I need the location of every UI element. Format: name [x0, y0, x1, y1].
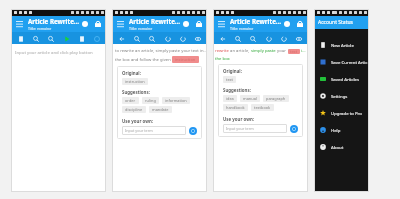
button[interactable]: Open navigation menu: [217, 20, 226, 29]
button[interactable]: Account: [182, 20, 190, 28]
staticText: ruling: [145, 98, 156, 103]
staticText: Suggestions:: [122, 89, 150, 95]
staticText: Original:: [223, 68, 242, 74]
staticText: an article,: [229, 48, 251, 54]
button[interactable]: Submit term: [189, 127, 197, 135]
button[interactable]: Save Current Artic: [314, 53, 369, 70]
staticText: instruction: [125, 79, 145, 84]
button[interactable]: Zoom in: [232, 33, 243, 44]
staticText: idea: [226, 96, 234, 101]
button[interactable]: Zoom in: [30, 33, 41, 44]
button[interactable]: About: [314, 138, 369, 155]
button[interactable]: Submit term: [290, 125, 298, 133]
staticText: Suggestions:: [223, 87, 251, 93]
staticText: Settings: [331, 93, 348, 99]
staticText: New Article: [331, 42, 354, 48]
button[interactable]: Input your term: [226, 124, 284, 133]
staticText: Saved Articles: [331, 76, 359, 82]
button[interactable]: Lock: [195, 20, 203, 28]
staticText: Article Rewriter & Spin...: [28, 17, 81, 25]
button[interactable]: Zoom in: [131, 33, 142, 44]
staticText: mandate: [152, 107, 169, 112]
button[interactable]: Zoom out: [247, 33, 258, 44]
button[interactable]: manual: [243, 96, 257, 101]
button[interactable]: Settings: [314, 87, 369, 104]
staticText: Input your term: [226, 126, 254, 131]
button[interactable]: Open navigation menu: [15, 20, 24, 29]
staticText: the box: [215, 56, 230, 62]
staticText: Save Current Artic: [331, 59, 368, 65]
staticText: Use your own:: [223, 116, 254, 122]
button[interactable]: Lock: [296, 20, 304, 28]
staticText: simply paste: [251, 48, 276, 54]
button[interactable]: Back: [116, 33, 127, 44]
button[interactable]: text: [226, 77, 233, 82]
staticText: discipline: [125, 107, 143, 112]
button[interactable]: Refresh: [278, 33, 289, 44]
button[interactable]: New document: [15, 33, 26, 44]
button[interactable]: paragraph: [266, 96, 286, 101]
staticText: information: [165, 98, 187, 103]
staticText: Article Rewriter & Spin...: [129, 17, 182, 25]
button[interactable]: New Article: [314, 36, 369, 53]
button[interactable]: Account: [81, 20, 89, 28]
button[interactable]: Preview: [192, 33, 203, 44]
button[interactable]: Account: [283, 20, 291, 28]
button[interactable]: textbook: [254, 105, 271, 110]
staticText: Title: romaine: [230, 26, 254, 31]
staticText: manual: [243, 96, 257, 101]
staticText: your: [276, 48, 288, 54]
button[interactable]: Copy: [76, 33, 87, 44]
button[interactable]: Info: [91, 33, 102, 44]
button[interactable]: Lock: [94, 20, 102, 28]
button[interactable]: Redo: [162, 33, 173, 44]
button[interactable]: discipline: [125, 107, 143, 112]
staticText: into: [300, 48, 308, 54]
staticText: handbook: [226, 105, 245, 110]
staticText: to rewrite an article, simply paste your…: [115, 48, 207, 54]
button[interactable]: order: [125, 98, 136, 103]
button[interactable]: Play: [61, 33, 72, 44]
button[interactable]: mandate: [152, 107, 169, 112]
staticText: Article Rewriter & Spin...: [230, 17, 283, 25]
staticText: Original:: [122, 70, 141, 76]
staticText: Help: [331, 127, 341, 133]
button[interactable]: Refresh: [177, 33, 188, 44]
button[interactable]: information: [165, 98, 187, 103]
staticText: Input your term: [125, 128, 153, 133]
staticText: instruction: [175, 57, 196, 62]
button[interactable]: Zoom out: [45, 33, 56, 44]
button[interactable]: handbook: [226, 105, 245, 110]
button[interactable]: Open navigation menu: [116, 20, 125, 29]
button[interactable]: Redo: [263, 33, 274, 44]
button[interactable]: Saved Articles: [314, 70, 369, 87]
staticText: text: [226, 77, 233, 82]
button[interactable]: Upgrade to Pro: [314, 104, 369, 121]
staticText: order: [125, 98, 136, 103]
staticText: rewrite: [215, 48, 229, 54]
staticText: About: [331, 144, 344, 150]
staticText: textbook: [254, 105, 271, 110]
staticText: the box and follow the given: [115, 57, 172, 63]
staticText: Upgrade to Pro: [331, 110, 362, 116]
staticText: Use your own:: [122, 118, 153, 124]
staticText: paragraph: [266, 96, 286, 101]
button[interactable]: Zoom out: [146, 33, 157, 44]
button[interactable]: Back: [217, 33, 228, 44]
button[interactable]: idea: [226, 96, 234, 101]
staticText: Title: romaine: [129, 26, 153, 31]
button[interactable]: Preview: [293, 33, 304, 44]
staticText: Input your article and click play button: [15, 49, 93, 55]
staticText: Account Status: [318, 19, 353, 26]
button[interactable]: ruling: [145, 98, 156, 103]
button[interactable]: instruction: [125, 79, 145, 84]
staticText: Title: romaine: [28, 26, 52, 31]
staticText: text: [290, 49, 298, 54]
button[interactable]: Help: [314, 121, 369, 138]
button[interactable]: Input your term: [125, 126, 183, 135]
